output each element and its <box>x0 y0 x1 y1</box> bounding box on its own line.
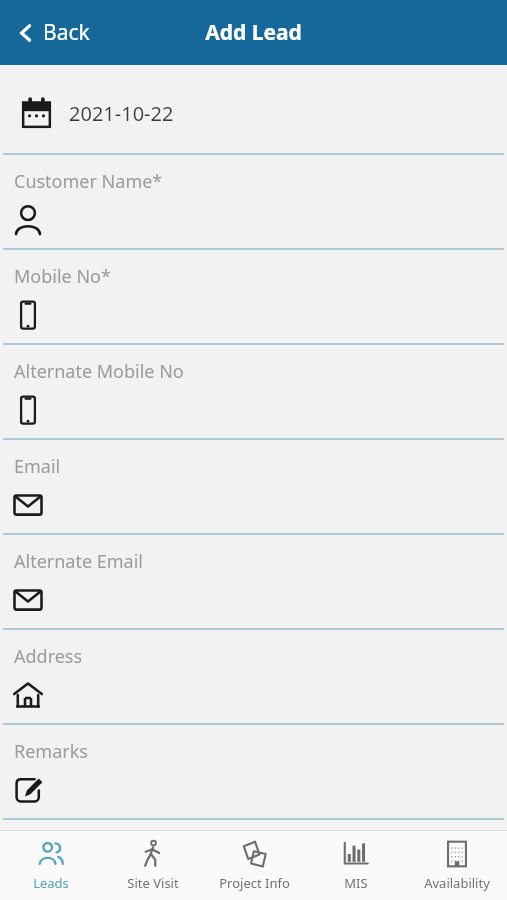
staticText: Availability <box>424 874 490 892</box>
button[interactable]: Customer Name* <box>0 155 507 248</box>
staticText: Address <box>14 644 83 669</box>
other: Availability <box>443 840 471 868</box>
staticText: Alternate Mobile No <box>14 359 184 384</box>
staticText: Remarks <box>14 739 88 764</box>
staticText: 2021-10-22 <box>69 100 174 127</box>
staticText: Email <box>14 454 61 479</box>
staticText: Add Lead <box>205 18 302 47</box>
staticText: Customer Name* <box>14 169 163 194</box>
button[interactable]: Email <box>0 440 507 533</box>
button[interactable]: Back <box>10 12 96 53</box>
other: MIS <box>342 840 370 868</box>
button[interactable]: Mobile No* <box>0 250 507 343</box>
button[interactable]: Project Info <box>204 834 305 898</box>
staticText: Back <box>43 18 90 47</box>
button[interactable]: Remarks <box>0 725 507 818</box>
staticText: Mobile No* <box>14 264 111 289</box>
staticText: Site Visit <box>127 874 179 892</box>
button[interactable]: Alternate Email <box>0 535 507 628</box>
button[interactable]: 2021-10-22 <box>0 65 507 153</box>
button[interactable]: Availability <box>406 834 507 898</box>
button[interactable]: MIS <box>305 834 406 898</box>
staticText: MIS <box>344 874 368 892</box>
staticText: Alternate Email <box>14 549 144 574</box>
other: Site Visit <box>139 840 167 868</box>
staticText: Leads <box>33 874 69 892</box>
button[interactable]: Leads <box>0 834 102 898</box>
button[interactable]: Alternate Mobile No <box>0 345 507 438</box>
staticText: Project Info <box>219 874 290 892</box>
other: Leads <box>37 840 65 868</box>
other: Project Info <box>241 840 269 868</box>
button[interactable]: Address <box>0 630 507 723</box>
button[interactable]: Site Visit <box>102 834 204 898</box>
